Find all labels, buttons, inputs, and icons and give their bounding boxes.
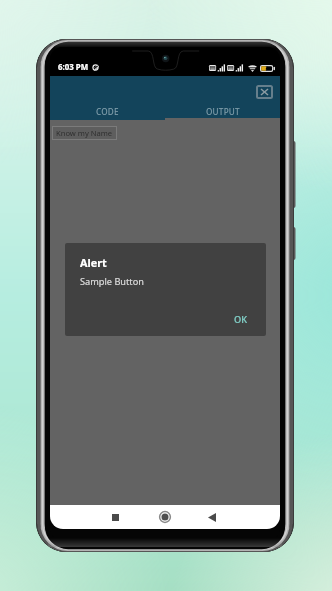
button[interactable]: Home xyxy=(155,507,175,527)
staticText: Know my Name xyxy=(56,128,113,138)
button[interactable]: OUTPUT xyxy=(165,105,280,118)
button[interactable]: Recents xyxy=(105,507,125,527)
staticText: CODE xyxy=(96,106,119,117)
button[interactable]: Know my Name xyxy=(52,126,117,140)
button[interactable]: OK xyxy=(230,311,252,328)
staticText: OUTPUT xyxy=(206,106,240,117)
staticText: 6:03 PM xyxy=(58,62,89,73)
staticText: Alert xyxy=(80,255,107,270)
button[interactable]: Close xyxy=(256,85,273,99)
staticText: OK xyxy=(234,313,248,326)
staticText: Sample Button xyxy=(80,275,144,288)
button[interactable]: Back xyxy=(202,507,222,527)
button[interactable]: CODE xyxy=(50,105,165,118)
